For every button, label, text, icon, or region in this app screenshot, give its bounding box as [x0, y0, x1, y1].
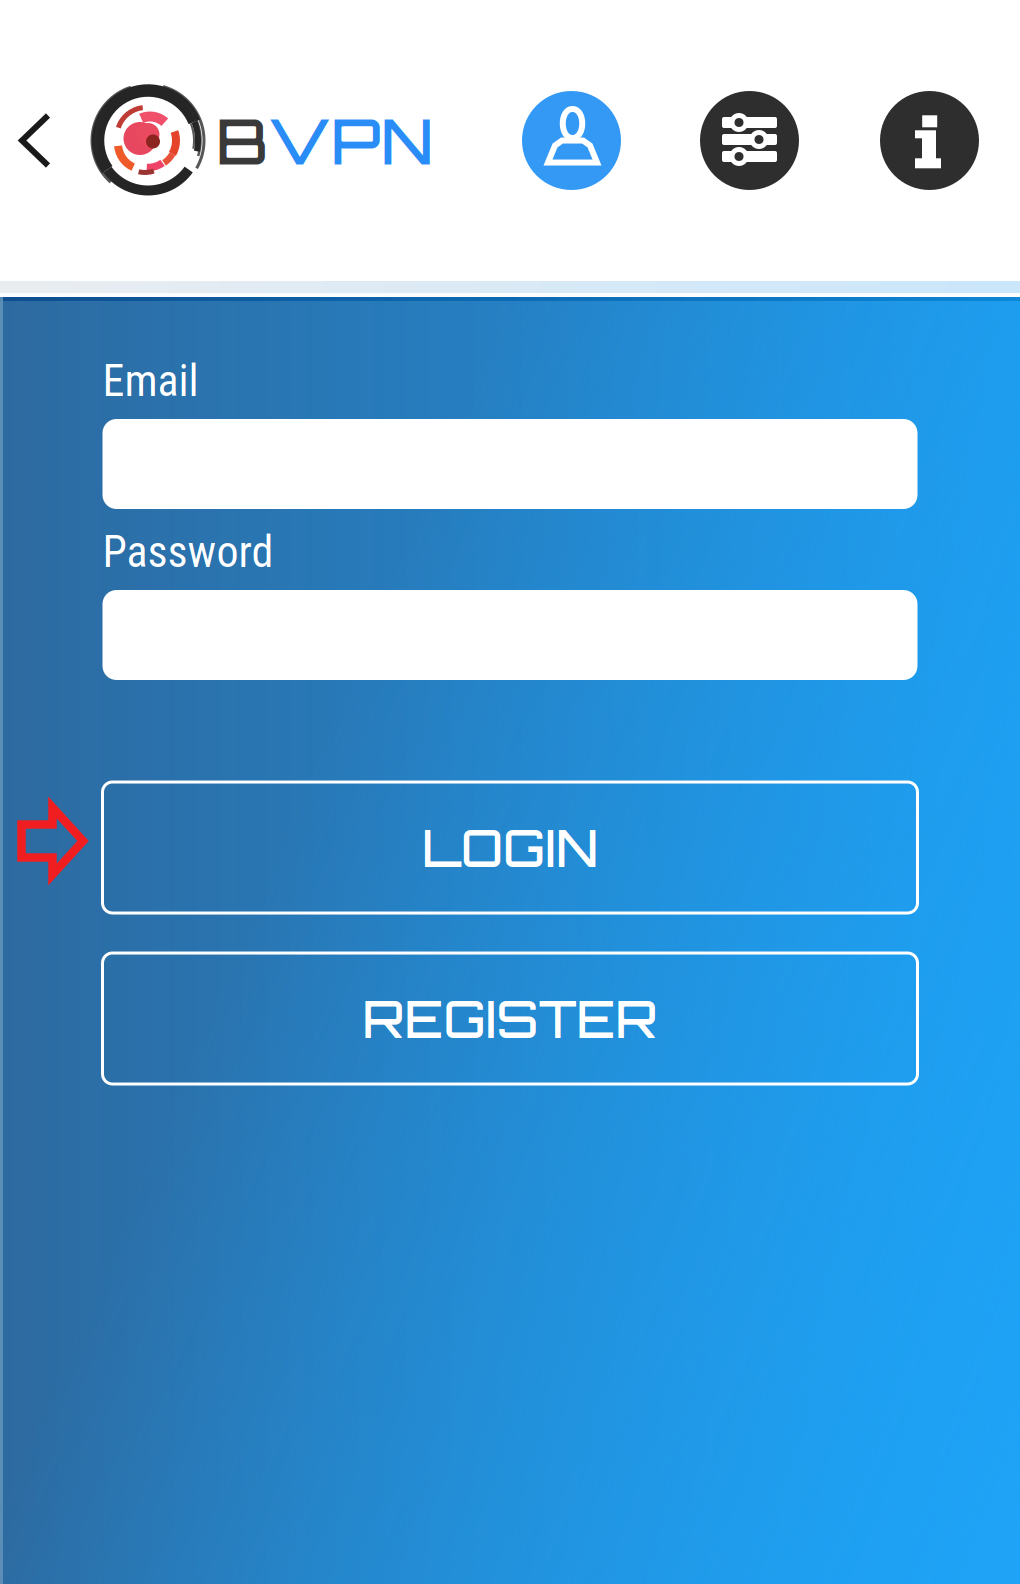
staticText: VPN [268, 101, 433, 180]
button[interactable]: Info [880, 91, 979, 190]
button[interactable]: Settings [700, 91, 799, 190]
button[interactable]: LOGIN [102, 782, 917, 913]
staticText: LOGIN [422, 816, 598, 879]
button[interactable]: REGISTER [102, 953, 917, 1084]
button[interactable]: Back [0, 70, 70, 210]
button[interactable]: B [90, 82, 433, 198]
staticText: Email [102, 355, 198, 407]
staticText: REGISTER [362, 987, 657, 1050]
button[interactable]: Account [522, 91, 621, 190]
staticText: Password [102, 526, 273, 578]
staticText: B [216, 101, 268, 180]
